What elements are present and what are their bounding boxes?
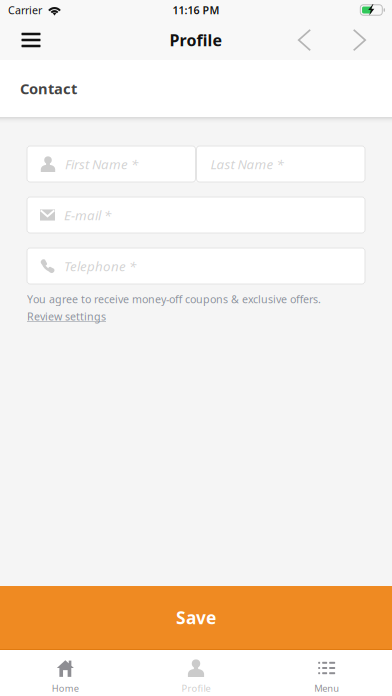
button[interactable]: Menu (9, 20, 53, 60)
staticText: Home (52, 682, 79, 694)
staticText: Carrier (8, 3, 42, 17)
button[interactable]: Back (277, 20, 332, 60)
button[interactable]: Save (0, 586, 392, 650)
button[interactable]: Home (0, 650, 131, 696)
button[interactable]: Telephone * (27, 248, 365, 284)
staticText: Review settings (27, 309, 106, 323)
staticText: You agree to receive money-off coupons &… (27, 292, 321, 306)
staticText: First Name * (65, 155, 138, 173)
button[interactable]: First Name * (27, 146, 195, 182)
staticText: Menu (314, 682, 339, 694)
button[interactable]: E-mail * (27, 197, 365, 233)
staticText: Save (176, 606, 216, 629)
staticText: Contact (20, 79, 77, 98)
staticText: E-mail * (64, 206, 111, 224)
button[interactable]: Forward (332, 20, 387, 60)
staticText: Telephone * (64, 257, 136, 275)
button[interactable]: Last Name * (196, 146, 365, 182)
staticText: 11:16 PM (172, 3, 219, 17)
staticText: Profile (181, 682, 210, 694)
button[interactable]: Menu (261, 650, 392, 696)
button[interactable]: Review settings (27, 309, 106, 323)
button[interactable]: Profile (131, 650, 261, 696)
staticText: Last Name * (210, 155, 283, 173)
staticText: Profile (169, 29, 222, 51)
